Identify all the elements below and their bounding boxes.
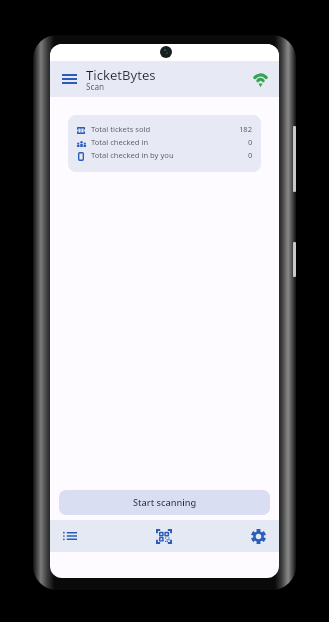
staticText: TicketBytes xyxy=(86,66,156,84)
staticText: Total checked in by you xyxy=(91,150,174,160)
button[interactable]: List xyxy=(63,520,77,552)
staticText: Scan xyxy=(86,81,105,92)
staticText: Start scanning xyxy=(133,496,197,509)
button[interactable]: Scan QR code xyxy=(156,520,172,552)
staticText: Total checked in xyxy=(91,137,149,147)
staticText: Total tickets sold xyxy=(91,124,151,134)
staticText: 0 xyxy=(248,137,253,147)
button[interactable]: Network connected xyxy=(248,65,272,93)
button[interactable]: Open navigation menu xyxy=(58,65,81,93)
button[interactable]: Start scanning xyxy=(59,490,270,515)
button[interactable]: Settings xyxy=(251,520,266,552)
staticText: 0 xyxy=(248,150,253,160)
staticText: 182 xyxy=(239,124,253,134)
